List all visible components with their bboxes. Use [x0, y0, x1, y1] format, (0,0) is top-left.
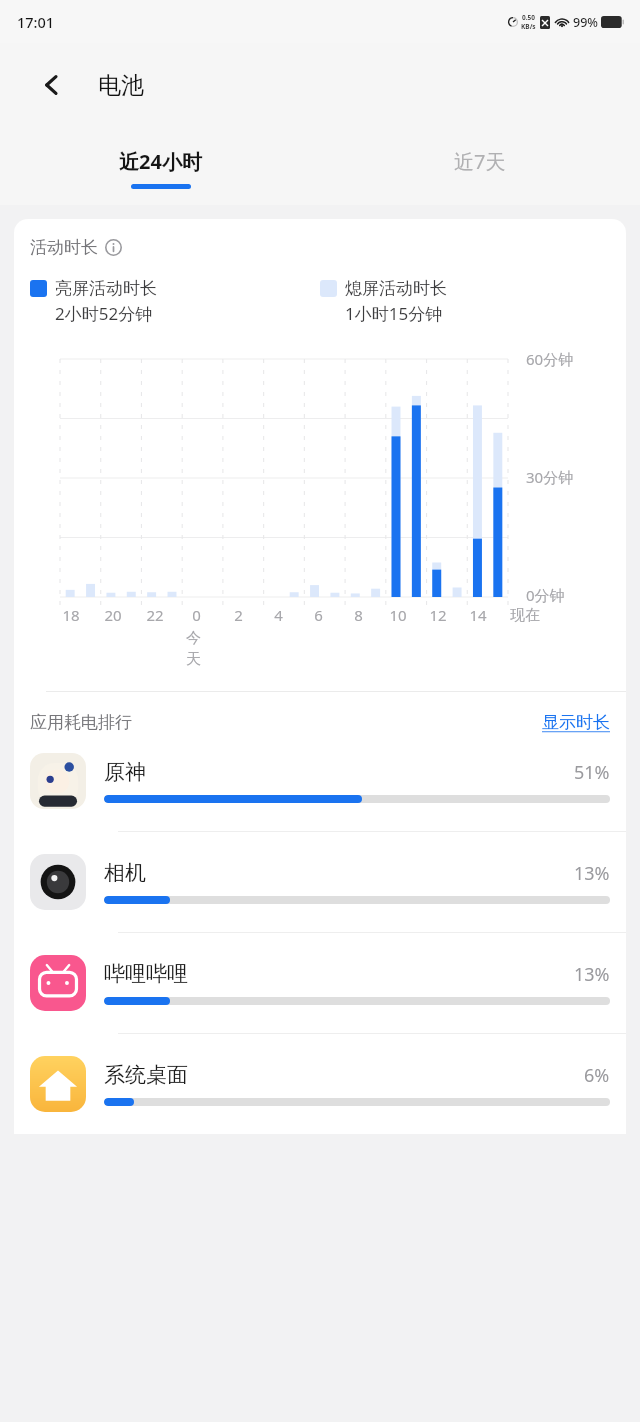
staticText: 60分钟 — [526, 349, 574, 369]
button[interactable]: 原神 — [14, 753, 626, 854]
staticText: 99% — [573, 14, 598, 31]
button[interactable]: 显示时长 — [542, 712, 610, 733]
staticText: 6 — [314, 605, 323, 625]
button[interactable]: 系统桌面 — [14, 1056, 626, 1134]
staticText: 0.50 — [522, 13, 535, 22]
staticText: 8 — [354, 605, 363, 625]
button[interactable]: 活动时长 — [30, 237, 122, 258]
staticText: 4 — [274, 605, 283, 625]
staticText: 20 — [104, 605, 122, 625]
button[interactable]: 近7天 — [320, 127, 640, 205]
staticText: 22 — [146, 605, 164, 625]
other: Info — [105, 239, 122, 256]
staticText: 14 — [469, 605, 487, 625]
staticText: 2小时52分钟 — [55, 302, 153, 325]
button[interactable]: 相机 — [14, 854, 626, 955]
staticText: 今天 — [186, 629, 207, 669]
staticText: 30分钟 — [526, 467, 574, 487]
staticText: 相机 — [104, 860, 146, 886]
button[interactable]: Back — [28, 61, 76, 109]
staticText: 12 — [429, 605, 447, 625]
staticText: 13% — [574, 962, 610, 987]
staticText: 显示时长 — [542, 712, 610, 733]
staticText: 6% — [584, 1063, 610, 1088]
staticText: 系统桌面 — [104, 1062, 188, 1088]
staticText: 17:01 — [17, 12, 55, 32]
staticText: 活动时长 — [30, 237, 98, 258]
staticText: 2 — [234, 605, 243, 625]
staticText: 近7天 — [454, 148, 506, 175]
staticText: 1小时15分钟 — [345, 302, 443, 325]
staticText: 13% — [574, 861, 610, 886]
staticText: 0 — [192, 605, 201, 625]
staticText: 0分钟 — [526, 585, 565, 605]
staticText: 现在 — [510, 606, 540, 625]
staticText: 哔哩哔哩 — [104, 961, 188, 987]
staticText: 应用耗电排行 — [30, 712, 132, 733]
button[interactable]: 近24小时 — [0, 127, 320, 205]
staticText: 18 — [62, 605, 80, 625]
staticText: 熄屏活动时长 — [345, 278, 447, 299]
staticText: 电池 — [98, 71, 144, 100]
staticText: KB/s — [521, 22, 536, 31]
staticText: 原神 — [104, 759, 146, 785]
button[interactable]: 哔哩哔哩 — [14, 955, 626, 1056]
staticText: 亮屏活动时长 — [55, 278, 157, 299]
staticText: 10 — [389, 605, 407, 625]
staticText: 51% — [574, 760, 610, 785]
staticText: 近24小时 — [119, 148, 202, 175]
